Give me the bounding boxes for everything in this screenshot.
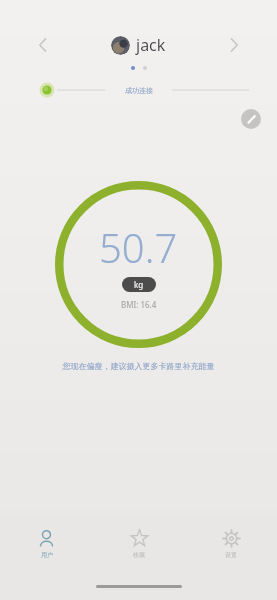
staticText: 设置 [225,551,237,559]
button[interactable]: Previous user [30,32,56,58]
button[interactable]: 设置 [185,516,277,578]
staticText: 收藏 [133,551,145,559]
staticText: BMI: 16.4 [121,299,157,310]
button[interactable]: jack [111,34,166,56]
staticText: 您现在偏瘦，建议摄入更多卡路里补充能量 [47,361,230,371]
staticText: kg [134,279,144,290]
staticText: 成功连接 [125,86,153,95]
staticText: 用户 [41,551,53,559]
staticText: jack [136,34,166,56]
button[interactable]: 收藏 [93,516,185,578]
button[interactable]: 50.7 [55,181,222,348]
button[interactable]: Next user [221,32,247,58]
button[interactable]: kg [122,277,156,292]
button[interactable]: 用户 [0,516,93,578]
staticText: 50.7 [99,220,178,274]
button[interactable]: Edit profile [241,109,261,129]
